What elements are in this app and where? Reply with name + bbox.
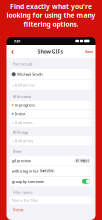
staticText: with a tag in list <box>12 168 38 174</box>
staticText: gif preview <box>12 158 31 163</box>
staticText: + Add gif tag <box>12 138 33 143</box>
button[interactable]: Michael Smith <box>9 69 92 79</box>
staticText: Filter name <box>12 190 32 195</box>
staticText: Delete <box>12 207 23 212</box>
button[interactable]: Name this filter <box>9 196 92 204</box>
staticText: ‹ <box>11 46 14 57</box>
staticText: In progress <box>15 102 35 108</box>
staticText: + Add status <box>12 120 33 125</box>
staticText: In test <box>15 111 25 116</box>
staticText: Find exactly what you're <box>10 2 92 11</box>
staticText: 9:41 <box>13 38 20 44</box>
button[interactable]: + Add gif tag <box>9 136 92 145</box>
button[interactable]: + Add person <box>9 80 92 90</box>
staticText: With tags <box>12 129 28 135</box>
staticText: Save <box>85 49 93 54</box>
staticText: + Add person <box>12 82 35 87</box>
staticText: Liam's first <box>40 169 53 173</box>
staticText: Michael Smith <box>17 72 42 77</box>
button[interactable]: all images <box>74 159 90 163</box>
button[interactable]: + Add status <box>9 118 92 127</box>
staticText: all images <box>76 159 89 162</box>
staticText: With status <box>12 94 31 99</box>
staticText: filtering options. <box>23 20 78 29</box>
button[interactable]: Back <box>8 46 16 56</box>
staticText: Name this filter <box>12 198 39 203</box>
button[interactable]: Save <box>84 46 93 56</box>
button[interactable]: Delete <box>9 208 92 212</box>
staticText: looking for using the many <box>6 11 95 20</box>
button[interactable]: In progress <box>9 101 92 109</box>
button[interactable]: Group by <box>82 179 90 184</box>
staticText: Show GIFs <box>37 48 63 55</box>
staticText: group by someone <box>12 179 44 184</box>
button[interactable]: In test <box>9 110 92 118</box>
staticText: Post include <box>12 61 32 67</box>
staticText: Show <box>12 149 21 154</box>
button[interactable]: Liam's first <box>39 169 55 173</box>
